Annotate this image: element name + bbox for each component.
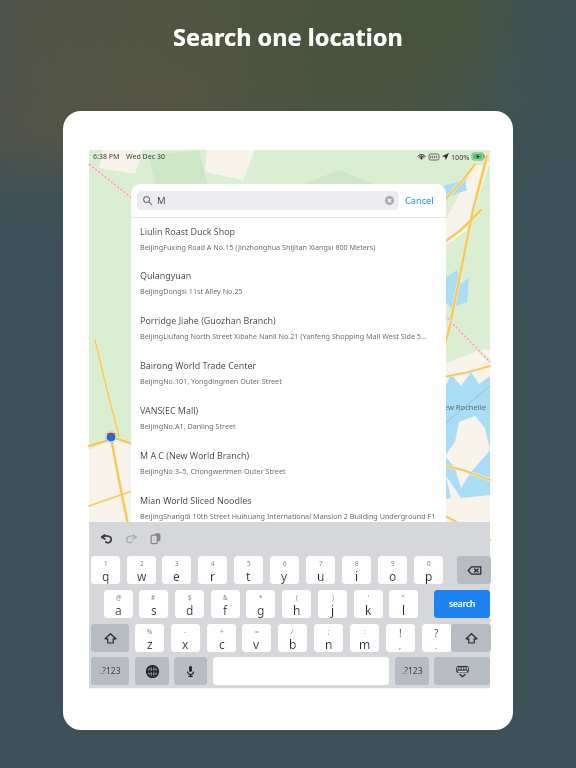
button[interactable]: $: [175, 590, 204, 618]
staticText: :: [364, 627, 366, 636]
button[interactable]: Redo: [125, 533, 137, 545]
button[interactable]: ): [318, 590, 347, 618]
button[interactable]: Change language: [135, 657, 169, 685]
button[interactable]: Undo: [101, 533, 113, 545]
staticText: 2: [140, 559, 144, 568]
button[interactable]: Backspace: [457, 556, 491, 584]
button[interactable]: :: [350, 624, 379, 652]
staticText: g: [257, 602, 265, 618]
staticText: y: [281, 568, 288, 584]
button[interactable]: .?123: [91, 657, 129, 685]
button[interactable]: !: [386, 624, 415, 652]
staticText: New Rochelle: [438, 402, 486, 412]
staticText: $: [188, 593, 192, 602]
staticText: 1: [104, 559, 108, 568]
staticText: BeijingNo.101, Yongdingmen Outer Street: [140, 376, 282, 386]
staticText: x: [182, 636, 189, 652]
button[interactable]: =: [242, 624, 271, 652]
button[interactable]: Shift: [451, 624, 491, 652]
staticText: +: [220, 627, 224, 636]
staticText: BeijingShangdi 10th Street Huihuang Inte…: [140, 511, 436, 521]
button[interactable]: &: [211, 590, 240, 618]
staticText: Qulangyuan: [140, 269, 192, 281]
button[interactable]: M: [137, 191, 399, 210]
button[interactable]: ": [389, 590, 418, 618]
button[interactable]: ;: [314, 624, 343, 652]
staticText: b: [289, 636, 297, 652]
button[interactable]: 2: [127, 556, 156, 584]
button[interactable]: ': [354, 590, 383, 618]
staticText: n: [325, 636, 333, 652]
staticText: z: [147, 636, 153, 652]
staticText: o: [389, 568, 397, 584]
staticText: ): [332, 593, 334, 602]
staticText: k: [365, 602, 372, 618]
staticText: BeijingNo.3–5, Chongwenmen Outer Street: [140, 466, 286, 476]
button[interactable]: VANS(EC Mall): [131, 398, 446, 443]
button[interactable]: -: [171, 624, 200, 652]
button[interactable]: Mian World Sliced Noodles: [131, 488, 446, 522]
staticText: %: [147, 627, 153, 636]
staticText: BeijingNo.A1, Danling Street: [140, 421, 236, 431]
button[interactable]: Hide keyboard: [434, 657, 490, 685]
button[interactable]: #: [139, 590, 168, 618]
button[interactable]: 7: [306, 556, 335, 584]
button[interactable]: 8: [342, 556, 371, 584]
button[interactable]: M A C (New World Branch): [131, 443, 446, 488]
staticText: i: [355, 568, 359, 584]
button[interactable]: Porridge Jiahe (Guozhan Branch): [131, 308, 446, 353]
button[interactable]: @: [104, 590, 133, 618]
staticText: v: [253, 636, 260, 652]
staticText: 100%: [451, 152, 470, 162]
staticText: Wed Dec 30: [126, 152, 166, 162]
button[interactable]: 4: [198, 556, 227, 584]
button[interactable]: (: [282, 590, 311, 618]
button[interactable]: Dictate: [174, 657, 207, 685]
staticText: Cancel: [405, 194, 434, 207]
staticText: &: [223, 593, 228, 602]
staticText: r: [210, 568, 215, 584]
button[interactable]: Paste: [149, 532, 162, 545]
button[interactable]: search: [434, 590, 490, 618]
button[interactable]: Clear text: [385, 196, 394, 205]
button[interactable]: 6: [270, 556, 299, 584]
button[interactable]: +: [207, 624, 236, 652]
button[interactable]: Liulin Roast Duck Shop: [131, 218, 446, 263]
staticText: @: [116, 593, 122, 602]
staticText: Liulin Roast Duck Shop: [140, 225, 236, 237]
staticText: w: [137, 568, 147, 584]
staticText: -: [184, 627, 187, 636]
staticText: l: [402, 602, 406, 618]
button[interactable]: Shift: [91, 624, 129, 652]
staticText: m: [359, 636, 371, 652]
staticText: Porridge Jiahe (Guozhan Branch): [140, 314, 276, 326]
staticText: h: [293, 602, 301, 618]
button[interactable]: 1: [91, 556, 120, 584]
button[interactable]: 3: [162, 556, 191, 584]
button[interactable]: Bairong World Trade Center: [131, 353, 446, 398]
staticText: j: [331, 602, 335, 618]
staticText: ": [402, 593, 405, 602]
staticText: /: [291, 627, 294, 636]
button[interactable]: %: [135, 624, 164, 652]
staticText: !: [399, 626, 402, 640]
staticText: ?: [434, 626, 439, 640]
button[interactable]: ?: [422, 624, 451, 652]
staticText: 6: [283, 559, 287, 568]
staticText: Bairong World Trade Center: [140, 359, 257, 371]
button[interactable]: /: [278, 624, 307, 652]
button[interactable]: Qulangyuan: [131, 263, 446, 308]
staticText: search: [449, 598, 476, 610]
button[interactable]: 0: [414, 556, 443, 584]
staticText: 3: [175, 559, 179, 568]
staticText: (: [296, 593, 298, 602]
button[interactable]: *: [246, 590, 275, 618]
button[interactable]: .?123: [395, 657, 429, 685]
staticText: M A C (New World Branch): [140, 449, 250, 461]
staticText: 4: [211, 559, 215, 568]
staticText: ,: [399, 640, 402, 651]
button[interactable]: Cancel: [399, 189, 440, 212]
button[interactable]: 5: [234, 556, 263, 584]
button[interactable]: 9: [378, 556, 407, 584]
